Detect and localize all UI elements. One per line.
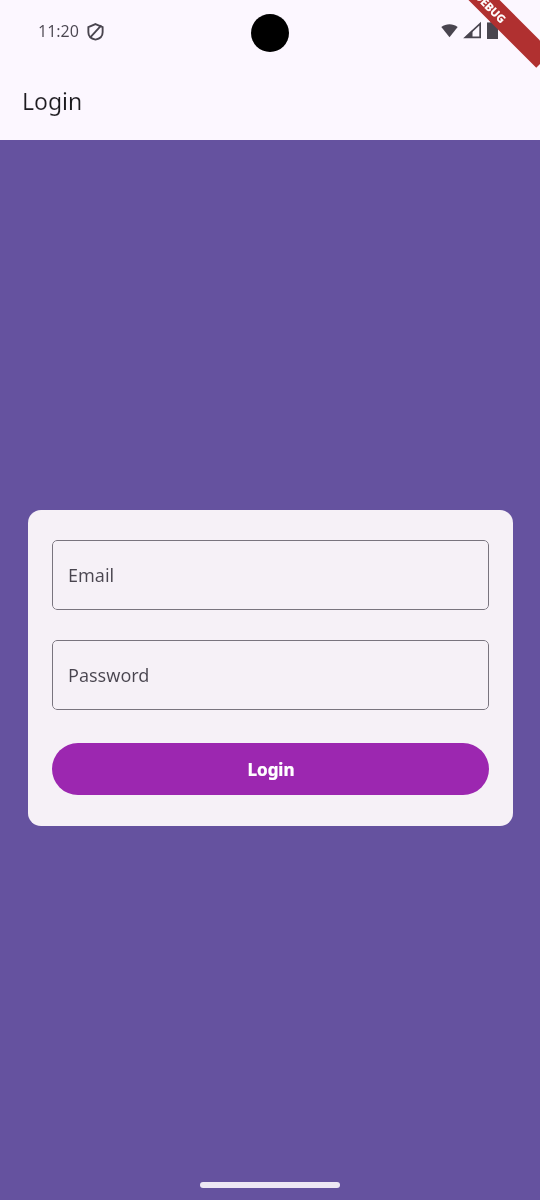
staticText: Login	[22, 85, 83, 116]
button[interactable]: Password	[52, 640, 489, 710]
other: Battery	[487, 21, 498, 39]
staticText: 11:20	[38, 20, 79, 42]
staticText: Email	[68, 563, 115, 588]
staticText: DEBUG	[472, 0, 509, 26]
staticText: Login	[247, 758, 295, 781]
button[interactable]: Email	[52, 540, 489, 610]
button[interactable]: Login	[52, 743, 489, 795]
staticText: Password	[68, 663, 150, 688]
other: Wi-Fi	[441, 22, 458, 39]
other: Mobile signal	[464, 22, 481, 39]
other: VPN off	[87, 23, 104, 40]
